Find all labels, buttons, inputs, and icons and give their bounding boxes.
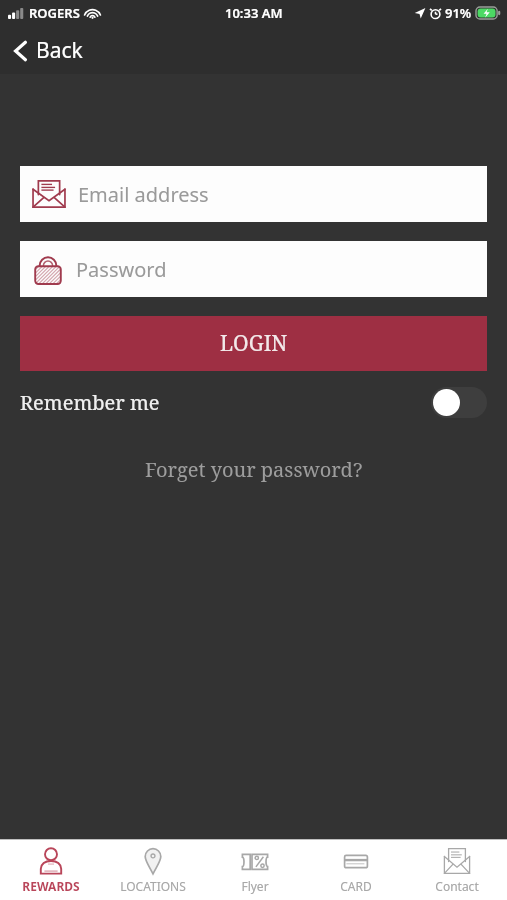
staticText: ROGERS xyxy=(29,4,80,22)
button[interactable]: Password xyxy=(20,241,487,297)
button[interactable]: Flyer xyxy=(204,840,305,900)
button[interactable]: Remember me xyxy=(20,387,487,418)
staticText: Password xyxy=(76,256,167,283)
button[interactable]: Back xyxy=(0,30,101,71)
button[interactable]: LOGIN xyxy=(20,316,487,371)
staticText: LOCATIONS xyxy=(120,878,186,894)
staticText: Back xyxy=(36,36,83,65)
button[interactable]: CARD xyxy=(305,840,406,900)
staticText: Forget your password? xyxy=(145,456,363,483)
button[interactable]: REWARDS xyxy=(0,840,102,900)
staticText: Contact xyxy=(435,878,479,894)
staticText: LOGIN xyxy=(220,329,288,358)
button[interactable]: Contact xyxy=(406,840,507,900)
staticText: 91% xyxy=(445,4,472,22)
button[interactable]: Forget your password? xyxy=(139,450,369,489)
button[interactable]: LOCATIONS xyxy=(102,840,204,900)
staticText: 10:33 AM xyxy=(225,4,283,22)
staticText: CARD xyxy=(340,878,372,894)
staticText: REWARDS xyxy=(22,878,80,894)
staticText: Email address xyxy=(78,181,209,208)
staticText: Flyer xyxy=(241,878,269,894)
button[interactable]: Email address xyxy=(20,166,487,222)
staticText: Remember me xyxy=(20,389,160,416)
